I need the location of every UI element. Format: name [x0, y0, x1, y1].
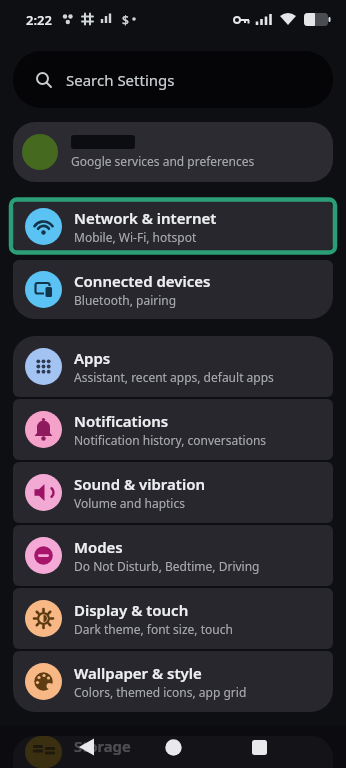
button[interactable]: Network & internet: [13, 199, 333, 253]
button[interactable]: Search Settings: [13, 51, 333, 108]
staticText: 2:22: [26, 11, 52, 29]
staticText: Modes: [74, 537, 123, 557]
button[interactable]: Connected devices: [13, 260, 333, 319]
staticText: Assistant, recent apps, default apps: [74, 369, 274, 385]
button[interactable]: Sound & vibration: [13, 462, 333, 523]
staticText: Google services and preferences: [71, 153, 255, 169]
staticText: Mobile, Wi-Fi, hotspot: [74, 229, 197, 245]
button[interactable]: Modes: [13, 525, 333, 586]
staticText: Sound & vibration: [74, 474, 205, 494]
button[interactable]: Storage: [13, 736, 333, 768]
button[interactable]: [231, 726, 287, 768]
staticText: Connected devices: [74, 271, 211, 291]
staticText: $: [122, 12, 129, 28]
staticText: Network & internet: [74, 208, 217, 228]
button[interactable]: [59, 726, 115, 768]
staticText: Notification history, conversations: [74, 432, 267, 448]
button[interactable]: Google services and preferences: [13, 122, 333, 182]
staticText: Bluetooth, pairing: [74, 292, 177, 308]
staticText: Volume and haptics: [74, 495, 185, 511]
button[interactable]: [145, 726, 201, 768]
staticText: Notifications: [74, 411, 169, 431]
staticText: Display & touch: [74, 600, 189, 620]
staticText: Storage: [74, 736, 131, 756]
button[interactable]: Apps: [13, 336, 333, 397]
staticText: Wallpaper & style: [74, 663, 202, 683]
staticText: Apps: [74, 348, 111, 368]
button[interactable]: Display & touch: [13, 588, 333, 649]
staticText: Dark theme, font size, touch: [74, 621, 233, 637]
staticText: Search Settings: [66, 70, 175, 90]
staticText: Colors, themed icons, app grid: [74, 684, 247, 700]
button[interactable]: Wallpaper & style: [13, 651, 333, 712]
staticText: Do Not Disturb, Bedtime, Driving: [74, 558, 260, 574]
button[interactable]: Notifications: [13, 399, 333, 460]
